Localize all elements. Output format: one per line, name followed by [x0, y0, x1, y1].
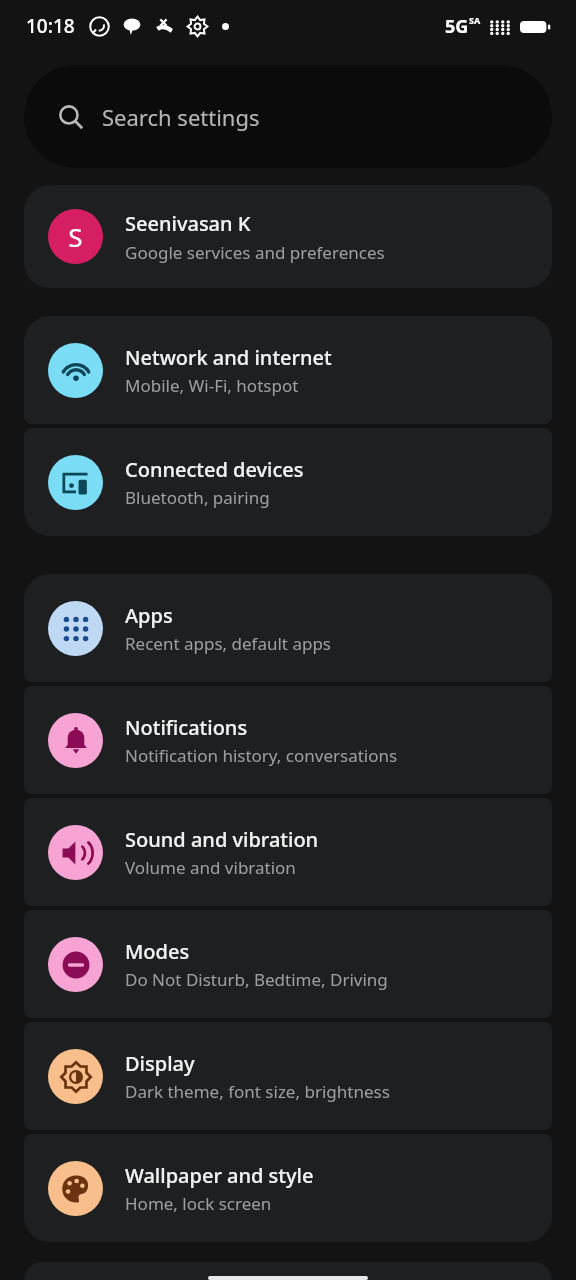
staticText: Dark theme, font size, brightness [125, 1080, 390, 1103]
button[interactable]: Modes [24, 910, 552, 1018]
staticText: Recent apps, default apps [125, 632, 332, 655]
staticText: Bluetooth, pairing [125, 486, 270, 509]
staticText: S [68, 219, 83, 254]
staticText: 10:18 [26, 13, 75, 39]
staticText: 5G [445, 14, 469, 39]
staticText: Notification history, conversations [125, 744, 398, 767]
button[interactable]: Wallpaper and style [24, 1134, 552, 1242]
staticText: Do Not Disturb, Bedtime, Driving [125, 968, 388, 991]
staticText: Search settings [102, 102, 260, 132]
staticText: Wallpaper and style [125, 1162, 314, 1189]
staticText: Volume and vibration [125, 856, 296, 879]
staticText: Connected devices [125, 456, 304, 483]
button[interactable]: Search settings [24, 65, 552, 168]
staticText: Apps [125, 602, 173, 629]
staticText: Modes [125, 938, 190, 965]
staticText: Network and internet [125, 344, 332, 371]
staticText: Display [125, 1050, 195, 1077]
button[interactable] [24, 1262, 552, 1280]
staticText: Notifications [125, 714, 248, 741]
staticText: Seenivasan K [125, 210, 251, 237]
button[interactable]: Network and internet [24, 316, 552, 424]
button[interactable]: Sound and vibration [24, 798, 552, 906]
staticText: Google services and preferences [125, 241, 385, 264]
button[interactable]: S [24, 185, 552, 288]
button[interactable]: Apps [24, 574, 552, 682]
staticText: Sound and vibration [125, 826, 319, 853]
button[interactable]: Connected devices [24, 428, 552, 536]
staticText: SA [469, 14, 481, 26]
button[interactable]: Notifications [24, 686, 552, 794]
button[interactable]: Display [24, 1022, 552, 1130]
staticText: Mobile, Wi-Fi, hotspot [125, 374, 299, 397]
staticText: Home, lock screen [125, 1192, 272, 1215]
